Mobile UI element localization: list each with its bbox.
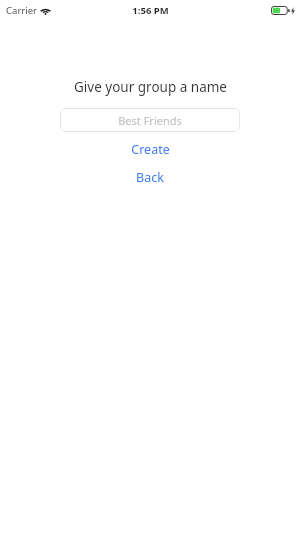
button[interactable]: Best Friends [60,108,240,132]
staticText: Best Friends [118,113,182,128]
staticText: Create [131,141,170,158]
button[interactable]: Create [0,138,300,160]
button[interactable]: Back [0,166,300,188]
staticText: Give your group a name [74,78,227,96]
staticText: Back [136,169,164,186]
staticText: 1:56 PM [132,4,169,17]
staticText: Carrier [6,4,37,17]
